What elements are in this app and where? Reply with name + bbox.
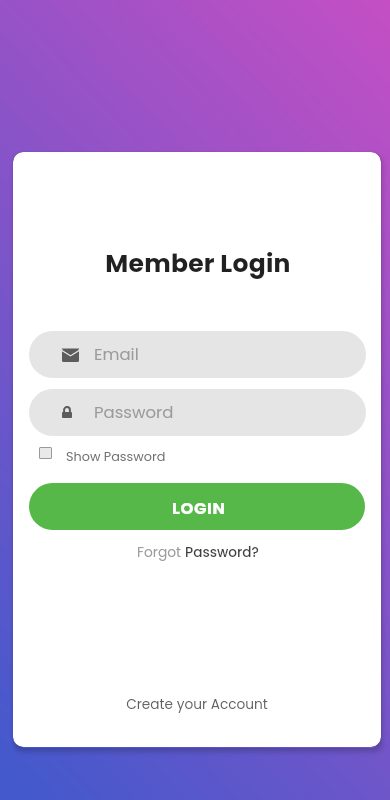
button[interactable]: LOGIN xyxy=(29,483,365,530)
staticText: Password? xyxy=(185,543,259,562)
button[interactable]: Create your Account xyxy=(13,695,381,714)
staticText: LOGIN xyxy=(172,497,226,520)
button[interactable]: Email xyxy=(29,331,366,378)
button[interactable]: Show password checkbox xyxy=(39,445,191,463)
staticText: Forgot xyxy=(137,543,185,562)
staticText: Password xyxy=(94,401,174,424)
staticText: Show Password xyxy=(66,448,166,466)
button[interactable]: Password xyxy=(29,389,366,436)
staticText: Email xyxy=(94,343,139,366)
staticText: Member Login xyxy=(14,246,381,281)
button[interactable]: Forgot xyxy=(14,543,381,562)
